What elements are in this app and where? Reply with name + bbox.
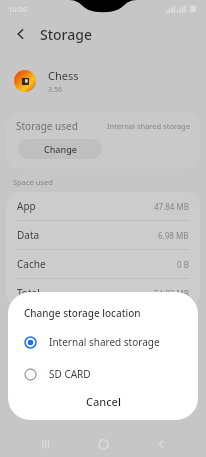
staticText: App: [17, 199, 36, 213]
button[interactable]: Home: [90, 431, 116, 457]
staticText: Chess: [48, 68, 79, 83]
staticText: Space used: [13, 177, 53, 187]
staticText: Storage: [40, 25, 92, 44]
staticText: Internal shared storage: [49, 335, 160, 349]
staticText: 54.82 MB: [154, 288, 189, 299]
button[interactable]: Cancel: [8, 386, 198, 416]
staticText: 6.98 MB: [158, 230, 189, 241]
staticText: 47.84 MB: [154, 201, 189, 212]
staticText: Internal shared storage: [107, 121, 190, 131]
button[interactable]: Recent apps: [32, 431, 58, 457]
staticText: Total: [17, 286, 40, 300]
button[interactable]: Data: [6, 221, 200, 249]
staticText: 10:00: [8, 4, 28, 14]
button[interactable]: Cache: [6, 250, 200, 278]
button[interactable]: Internal shared storage: [8, 330, 198, 354]
button[interactable]: Change: [18, 139, 102, 159]
staticText: Cache: [17, 257, 46, 271]
staticText: 3.56: [48, 85, 62, 95]
staticText: Change: [44, 143, 77, 155]
staticText: 0 B: [177, 259, 189, 270]
staticText: SD CARD: [49, 367, 91, 381]
button[interactable]: SD CARD: [8, 362, 198, 386]
staticText: Data: [17, 228, 40, 242]
staticText: Cancel: [86, 394, 121, 409]
button[interactable]: Back: [10, 23, 32, 45]
staticText: Storage used: [16, 119, 78, 133]
button[interactable]: App: [6, 192, 200, 220]
button[interactable]: Chess: [0, 59, 206, 103]
staticText: Change storage location: [24, 306, 141, 320]
button[interactable]: Total: [6, 279, 200, 307]
